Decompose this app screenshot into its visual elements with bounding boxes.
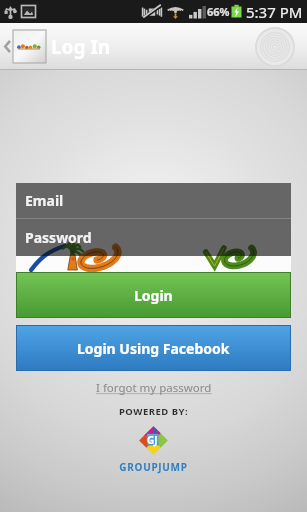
button[interactable]: Back <box>0 30 51 63</box>
staticText: Log In <box>51 34 111 60</box>
staticText: Password <box>25 228 92 247</box>
staticText: GJ <box>147 433 158 447</box>
staticText: 66% <box>207 4 230 19</box>
staticText: Login <box>134 286 173 305</box>
staticText: Email <box>25 191 64 210</box>
button[interactable]: Refresh <box>253 25 297 69</box>
button[interactable]: Login Using Facebook <box>17 326 290 370</box>
button[interactable]: Password <box>16 219 291 256</box>
staticText: POWERED BY: <box>0 405 307 418</box>
staticText: Login Using Facebook <box>77 339 230 358</box>
button[interactable]: I forgot my password <box>96 380 212 396</box>
button[interactable]: Email <box>16 183 291 218</box>
staticText: GROUPJUMP <box>0 460 307 474</box>
staticText: 5:37 PM <box>246 2 303 22</box>
button[interactable]: Login <box>17 273 290 317</box>
